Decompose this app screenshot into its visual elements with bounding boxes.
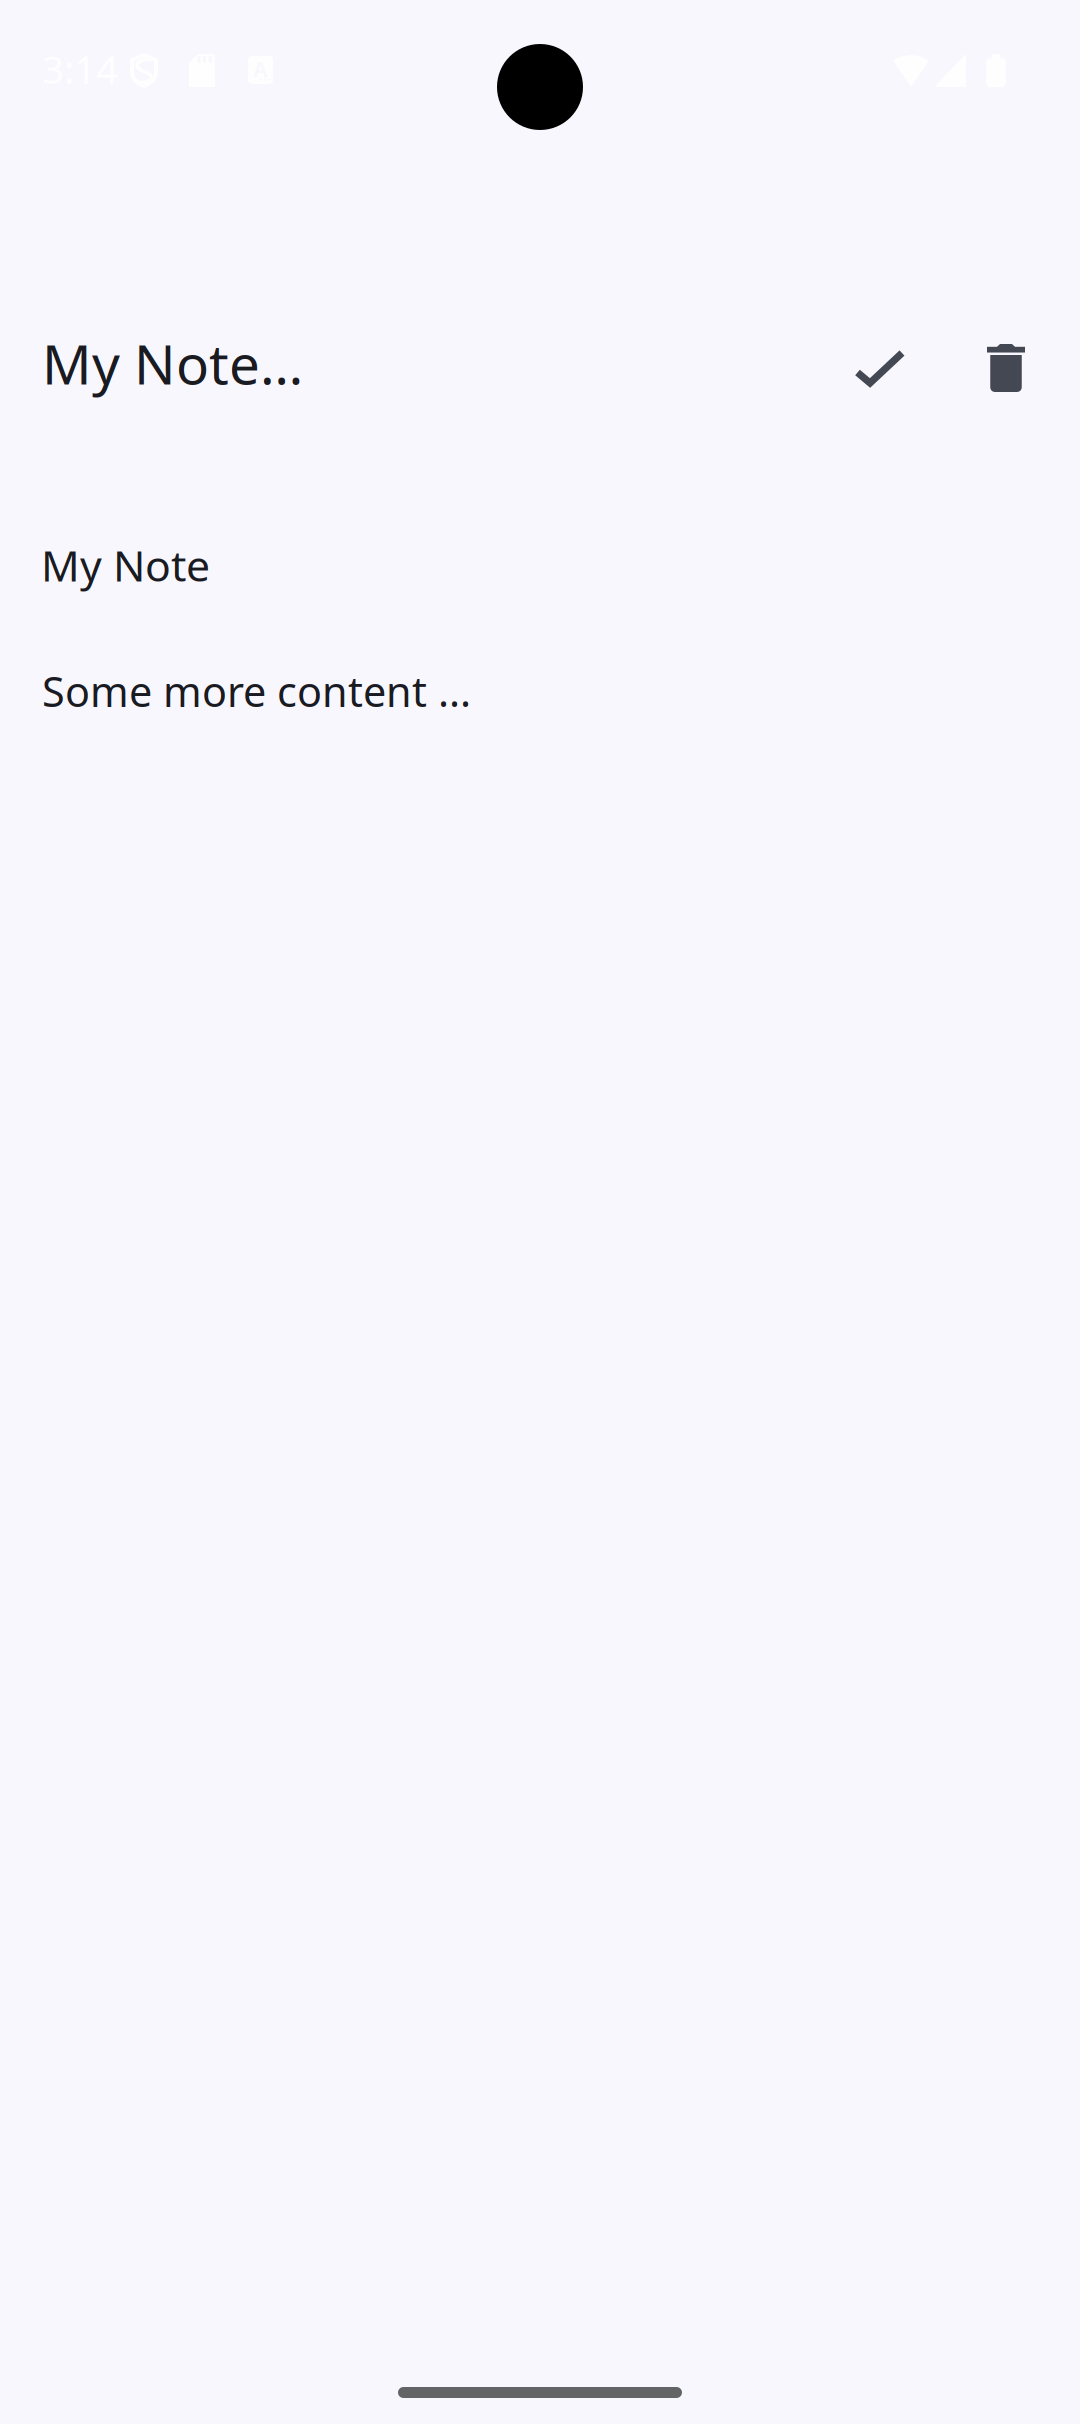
staticText: My Note — [41, 537, 210, 593]
button[interactable]: Save — [829, 310, 931, 426]
button[interactable]: Delete — [955, 310, 1057, 426]
button[interactable]: My Note — [41, 530, 1037, 600]
button[interactable]: Some more content ... — [42, 657, 1038, 725]
staticText: Some more content ... — [42, 664, 471, 718]
staticText: My Note… — [42, 327, 303, 400]
